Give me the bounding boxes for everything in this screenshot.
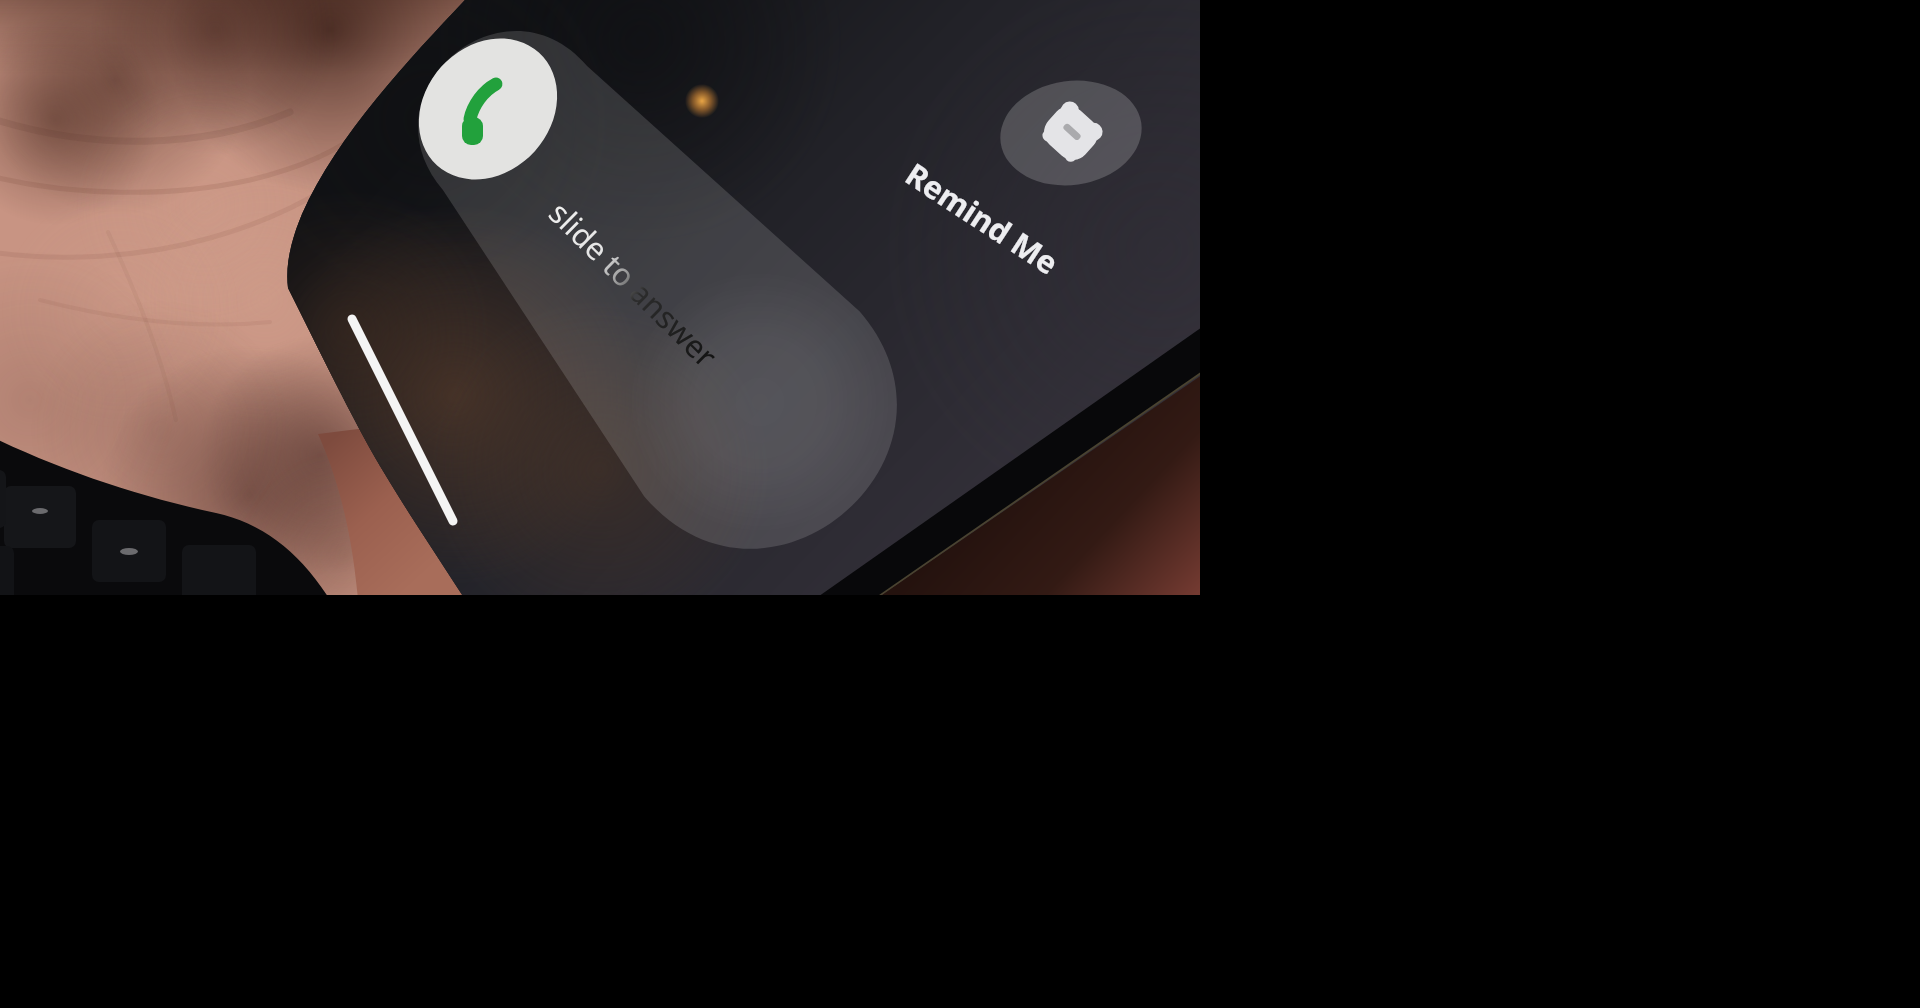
button[interactable]: Incoming call, slide to answer <box>0 0 1920 1008</box>
